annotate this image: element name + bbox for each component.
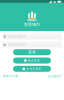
staticText: 请输入手机号 [8,35,26,38]
staticText: 登录 [28,50,36,55]
button[interactable]: 登录 [13,49,51,55]
staticText: 忘记密码? [48,74,61,78]
button[interactable]: 请输入手机号 [2,34,62,40]
staticText: 支付宝登录 [26,67,41,70]
staticText: 智慧城市 [24,22,40,27]
staticText: 请输入验证码 [8,43,26,46]
staticText: 微信登录 [28,59,40,62]
button[interactable]: 支付宝登录 [13,66,51,72]
staticText: 新用户注册 [3,74,18,78]
button[interactable]: 请输入验证码 [2,42,62,48]
button[interactable]: 微信登录 [13,57,51,63]
button[interactable]: 新用户注册 [3,74,18,78]
button[interactable]: 忘记密码? [48,74,61,78]
